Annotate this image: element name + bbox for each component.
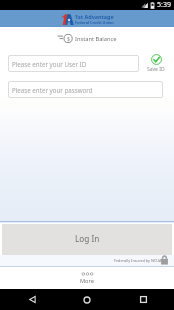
- staticText: Please enter your password: [12, 86, 93, 94]
- staticText: Please enter your User ID: [12, 60, 87, 68]
- button[interactable]: Recent apps: [116, 289, 174, 310]
- button[interactable]: More: [0, 267, 174, 289]
- staticText: Federally Insured by NCUA: [114, 258, 162, 263]
- button[interactable]: Please enter your User ID: [8, 55, 139, 72]
- staticText: 5:39: [157, 0, 171, 10]
- staticText: $: [67, 35, 70, 42]
- staticText: Instant Balance: [75, 35, 117, 43]
- staticText: Federal Credit Union: [75, 20, 114, 25]
- staticText: Log In: [75, 233, 100, 244]
- button[interactable]: Please enter your password: [8, 81, 163, 98]
- staticText: Save ID: [147, 66, 165, 73]
- staticText: More: [80, 277, 94, 285]
- button[interactable]: Save ID: [144, 54, 168, 73]
- staticText: 1st Advantage: [75, 13, 114, 20]
- button[interactable]: Back: [0, 289, 58, 310]
- button[interactable]: $: [0, 30, 174, 47]
- button[interactable]: Log In: [2, 224, 172, 255]
- button[interactable]: Home: [58, 289, 116, 310]
